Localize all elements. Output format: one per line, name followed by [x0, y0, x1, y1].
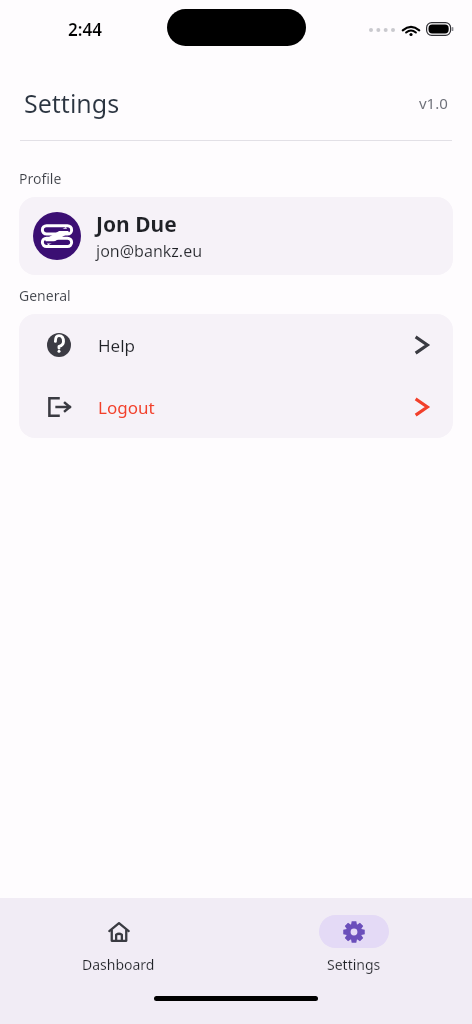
staticText: Help — [98, 334, 136, 357]
staticText: Dashboard — [82, 955, 155, 974]
button[interactable]: Settings — [313, 913, 395, 976]
button[interactable]: Dashboard — [76, 913, 161, 976]
staticText: v1.0 — [419, 93, 448, 113]
staticText: 2:44 — [68, 18, 102, 41]
button[interactable]: Help — [19, 314, 453, 376]
staticText: Settings — [327, 955, 381, 974]
staticText: Settings — [24, 86, 120, 120]
button[interactable]: Jon Due — [19, 197, 453, 275]
staticText: Logout — [98, 396, 155, 419]
staticText: General — [19, 286, 71, 305]
staticText: Profile — [19, 169, 62, 188]
staticText: jon@bankz.eu — [96, 240, 203, 262]
button[interactable]: Logout — [19, 376, 453, 438]
staticText: Jon Due — [96, 210, 177, 239]
